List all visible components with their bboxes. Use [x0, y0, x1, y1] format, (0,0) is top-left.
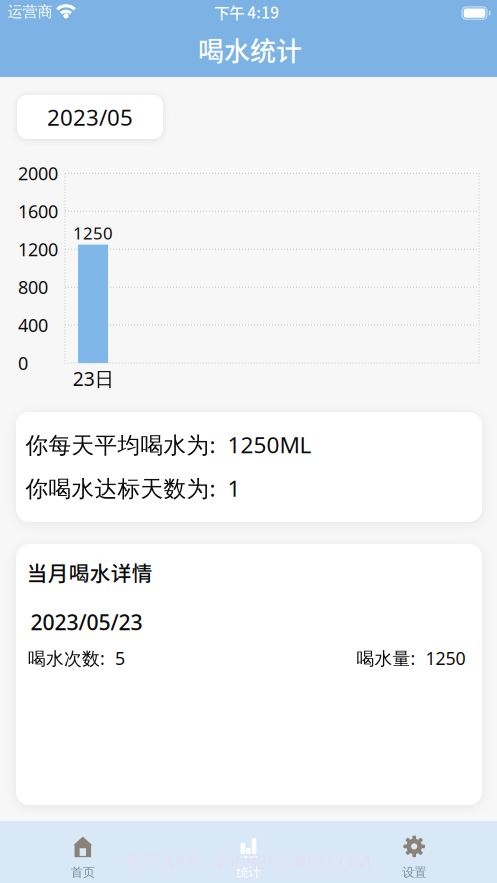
- staticText: 喝水统计: [198, 31, 302, 68]
- staticText: 1250: [73, 222, 113, 244]
- staticText: 0: [18, 351, 28, 375]
- staticText: 统计: [236, 865, 260, 880]
- staticText: 800: [18, 275, 48, 299]
- staticText: 400: [18, 313, 48, 337]
- staticText: 2023/05/23: [31, 608, 143, 636]
- button[interactable]: 首页: [42, 821, 124, 883]
- button[interactable]: 统计: [207, 821, 289, 883]
- staticText: 设置: [402, 865, 426, 880]
- staticText: 下午 4:19: [214, 1, 279, 23]
- staticText: 2023/05: [47, 102, 133, 132]
- staticText: 首页: [71, 865, 95, 880]
- staticText: 1600: [18, 199, 58, 223]
- staticText: 你每天平均喝水为: 1250ML: [25, 429, 311, 460]
- staticText: 易下APP · 4008891800.COM: [124, 848, 372, 875]
- staticText: 运营商: [8, 2, 53, 21]
- staticText: 喝水次数: 5: [28, 646, 125, 670]
- staticText: 你喝水达标天数为: 1: [25, 473, 240, 503]
- staticText: 23日: [73, 365, 114, 392]
- staticText: 当月喝水详情: [27, 557, 153, 587]
- button[interactable]: 2023/05: [17, 95, 163, 139]
- staticText: 2000: [18, 161, 58, 185]
- staticText: 喝水量: 1250: [356, 646, 465, 670]
- staticText: 1200: [18, 237, 58, 261]
- button[interactable]: 设置: [373, 821, 455, 883]
